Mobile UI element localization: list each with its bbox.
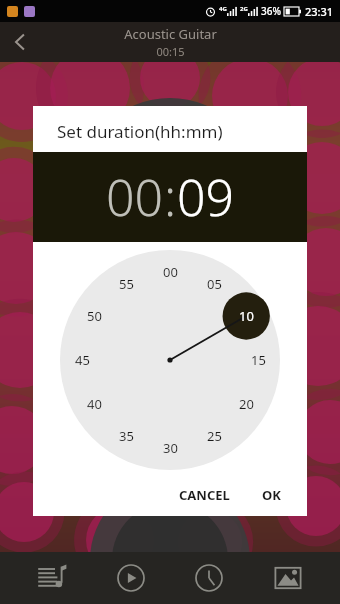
staticText: 36% <box>261 4 281 18</box>
staticText: 50 <box>87 307 102 325</box>
staticText: : <box>164 163 177 231</box>
staticText: 25 <box>207 427 222 445</box>
staticText: 2G <box>240 5 248 13</box>
staticText: 00 <box>163 263 178 281</box>
button[interactable]: Play <box>105 552 157 604</box>
button[interactable]: 00 <box>33 242 307 474</box>
staticText: Acoustic Guitar <box>124 25 217 43</box>
staticText: 15 <box>251 351 266 369</box>
staticText: 23:31 <box>305 4 334 19</box>
button[interactable]: Back <box>0 22 40 62</box>
button[interactable]: CANCEL <box>171 478 238 512</box>
button[interactable]: Timer <box>183 552 235 604</box>
staticText: Set duration(hh:mm) <box>57 120 223 143</box>
staticText: OK <box>262 486 281 504</box>
button[interactable]: 00 <box>106 163 164 231</box>
staticText: 35 <box>119 427 134 445</box>
staticText: 30 <box>163 439 178 457</box>
staticText: 45 <box>75 351 90 369</box>
staticText: 20 <box>239 395 254 413</box>
staticText: 09 <box>177 163 235 231</box>
button[interactable]: 09 <box>177 163 235 231</box>
staticText: 55 <box>119 275 134 293</box>
button[interactable]: Playlist <box>26 552 78 604</box>
staticText: 00:15 <box>156 44 185 59</box>
staticText: 05 <box>207 275 222 293</box>
staticText: 4G <box>219 5 227 13</box>
staticText: 40 <box>87 395 102 413</box>
staticText: 00 <box>106 163 164 231</box>
button[interactable]: Gallery <box>262 552 314 604</box>
button[interactable]: OK <box>254 478 289 512</box>
staticText: CANCEL <box>179 486 230 504</box>
staticText: 10 <box>239 307 254 325</box>
